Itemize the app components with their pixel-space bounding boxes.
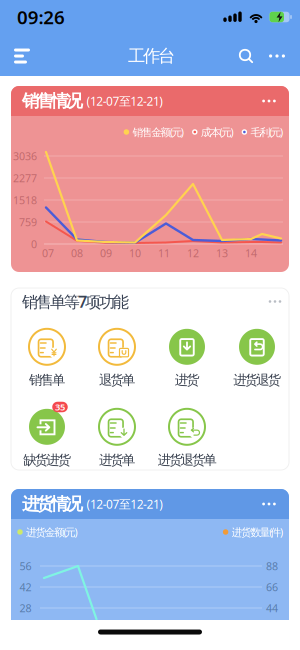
staticText: 09 [100, 246, 112, 260]
staticText: 毛利(元) [250, 125, 283, 139]
staticText: 42 [19, 580, 31, 594]
staticText: 07 [42, 246, 54, 260]
staticText: 2277 [13, 171, 37, 185]
button[interactable] [257, 93, 281, 109]
button[interactable] [236, 46, 256, 66]
staticText: 09:26 [17, 5, 65, 29]
staticText: 56 [19, 559, 31, 573]
staticText: 进货退货 [233, 372, 281, 388]
button[interactable] [257, 496, 281, 512]
staticText: 0 [31, 237, 37, 251]
staticText: 12 [187, 246, 199, 260]
staticText: 进货数量(件) [232, 525, 283, 539]
staticText: 退货单 [99, 372, 135, 388]
staticText: 10 [129, 246, 141, 260]
staticText: 14 [245, 246, 257, 260]
staticText: 11 [158, 246, 170, 260]
staticText: 工作台 [128, 45, 175, 67]
staticText: (12-07至12-21) [86, 496, 163, 512]
staticText: 3036 [13, 149, 37, 163]
button[interactable]: 进货退货单 [153, 410, 221, 467]
staticText: 进货情况 [22, 493, 82, 515]
staticText: 13 [216, 246, 228, 260]
button[interactable] [12, 46, 34, 66]
button[interactable] [265, 48, 289, 64]
staticText: 缺货进货 [23, 452, 71, 468]
staticText: 销售情况 [22, 90, 82, 112]
button[interactable]: 缺货进货 [13, 410, 81, 467]
button[interactable]: 进货退货 [223, 330, 291, 387]
staticText: 35 [55, 401, 65, 413]
staticText: 进货金额(元) [26, 525, 77, 539]
staticText: 88 [266, 559, 278, 573]
staticText: 08 [71, 246, 83, 260]
staticText: 销售金额(元) [132, 125, 184, 139]
button[interactable]: 进货 [153, 330, 221, 387]
button[interactable]: 销售单 [13, 330, 81, 387]
button[interactable]: 进货单 [83, 410, 151, 467]
button[interactable]: 退货单 [83, 330, 151, 387]
staticText: 759 [19, 215, 37, 229]
staticText: 44 [266, 601, 278, 615]
staticText: 进货退货单 [157, 452, 216, 468]
staticText: 成本(元) [201, 125, 233, 139]
staticText: 1518 [13, 193, 37, 207]
staticText: 进货 [175, 372, 199, 388]
button[interactable] [264, 294, 286, 308]
staticText: 销售单等7项功能 [22, 291, 129, 312]
staticText: 进货单 [99, 452, 135, 468]
staticText: 销售单 [29, 372, 65, 388]
staticText: 28 [19, 601, 31, 615]
staticText: (12-07至12-21) [86, 93, 163, 109]
staticText: 66 [266, 580, 278, 594]
